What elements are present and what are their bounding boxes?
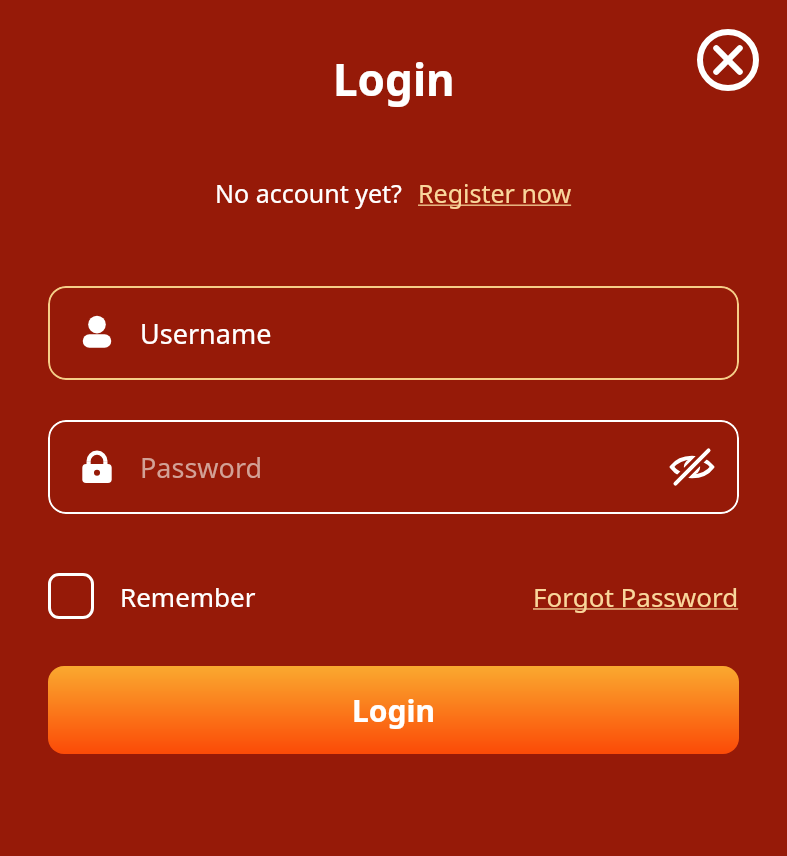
button[interactable]: Close: [695, 27, 761, 93]
button[interactable]: Remember: [48, 573, 256, 619]
staticText: Username: [140, 315, 272, 352]
staticText: Register now: [418, 176, 572, 210]
staticText: Password: [140, 449, 263, 486]
staticText: Login: [333, 49, 455, 109]
button[interactable]: Username: [48, 286, 739, 380]
staticText: Forgot Password: [533, 579, 739, 614]
button[interactable]: Password: [48, 420, 739, 514]
button[interactable]: Forgot Password: [533, 579, 739, 614]
button[interactable]: Register now: [418, 176, 572, 210]
staticText: No account yet?: [215, 176, 402, 210]
button[interactable]: Show password: [665, 440, 719, 494]
button[interactable]: Login: [48, 666, 739, 754]
staticText: Remember: [120, 579, 256, 614]
staticText: Login: [352, 690, 435, 731]
